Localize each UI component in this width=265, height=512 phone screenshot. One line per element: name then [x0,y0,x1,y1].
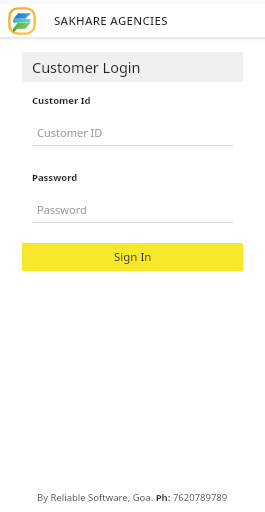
button[interactable]: Customer ID [32,124,233,146]
staticText: By Reliable Software, Goa. Ph: 762078978… [37,491,228,504]
staticText: Customer ID [37,125,103,140]
button[interactable]: Sign In [22,243,243,271]
staticText: Password [32,171,78,184]
staticText: Customer Id [32,94,91,107]
button[interactable]: Password [32,201,233,223]
staticText: Sign In [114,249,152,265]
staticText: Customer Login [32,57,141,77]
button[interactable]: App logo [8,7,36,35]
staticText: Password [37,202,87,217]
staticText: SAKHARE AGENCIES [54,13,168,29]
